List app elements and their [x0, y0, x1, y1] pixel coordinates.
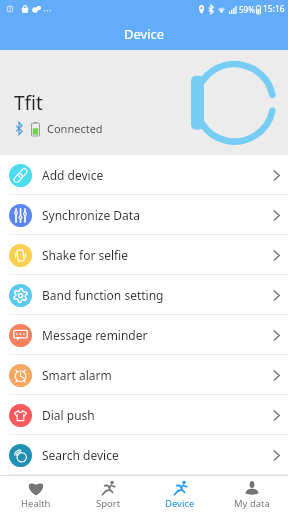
- staticText: Device: [165, 497, 195, 510]
- staticText: Synchronize Data: [42, 207, 140, 223]
- staticText: Smart alarm: [42, 367, 112, 383]
- button[interactable]: Message reminder: [0, 315, 288, 355]
- button[interactable]: Shake for selfie: [0, 235, 288, 275]
- staticText: Search device: [42, 447, 119, 463]
- staticText: Message reminder: [42, 327, 148, 343]
- staticText: Health: [21, 497, 51, 510]
- staticText: Dial push: [42, 407, 95, 423]
- staticText: Tfit: [14, 90, 43, 116]
- staticText: My data: [234, 497, 270, 510]
- button[interactable]: My data: [216, 476, 288, 512]
- button[interactable]: Device: [144, 476, 216, 512]
- staticText: 15:16: [263, 3, 285, 15]
- button[interactable]: Synchronize Data: [0, 195, 288, 235]
- button[interactable]: Search device: [0, 435, 288, 475]
- button[interactable]: Health: [0, 476, 72, 512]
- button[interactable]: Add device: [0, 155, 288, 195]
- staticText: Device: [124, 25, 165, 43]
- staticText: Sport: [96, 497, 121, 510]
- staticText: 59%: [239, 4, 255, 15]
- button[interactable]: Dial push: [0, 395, 288, 435]
- button[interactable]: Band function setting: [0, 275, 288, 315]
- staticText: Add device: [42, 167, 104, 183]
- button[interactable]: Sport: [72, 476, 144, 512]
- button[interactable]: Tfit: [0, 50, 288, 155]
- staticText: Shake for selfie: [42, 247, 129, 263]
- staticText: Connected: [47, 121, 103, 136]
- button[interactable]: Smart alarm: [0, 355, 288, 395]
- staticText: Band function setting: [42, 287, 164, 303]
